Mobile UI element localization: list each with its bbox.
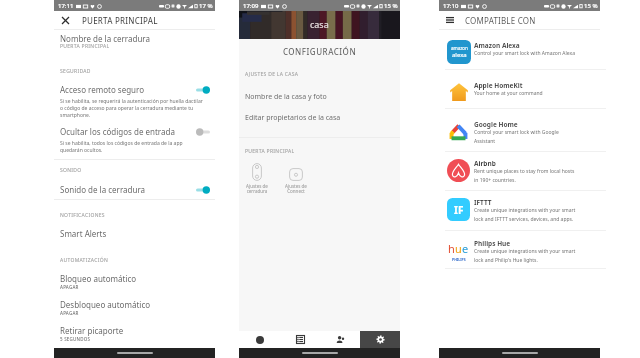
button[interactable]: Google Home (439, 118, 600, 157)
staticText: Nombre de la cerradura (60, 33, 150, 44)
button[interactable]: Ajustes de Connect (276, 160, 315, 195)
staticText: CONFIGURACIÓN (239, 46, 400, 57)
staticText: Google Home (474, 120, 518, 129)
staticText: casa (310, 18, 329, 30)
button[interactable]: Ajustes de cerradura (237, 160, 276, 195)
staticText: Create unique integrations with your sma… (474, 248, 580, 263)
staticText: u (455, 241, 462, 256)
staticText: Amazon Alexa (474, 41, 520, 50)
staticText: APAGAR (60, 310, 79, 316)
staticText: Acceso remoto seguro (60, 84, 195, 95)
staticText: COMPATIBLE CON (465, 15, 536, 26)
staticText: h (448, 241, 455, 256)
button[interactable]: h (439, 237, 600, 276)
staticText: IF (454, 203, 464, 217)
staticText: PUERTA PRINCIPAL (82, 15, 158, 26)
staticText: Bloqueo automático (60, 273, 137, 284)
button[interactable]: Menu (442, 12, 458, 28)
button[interactable]: Sonido de la cerradura (54, 184, 215, 195)
staticText: Your home at your command (474, 90, 543, 97)
staticText: Retirar picaporte (60, 325, 124, 336)
staticText: Philips Hue (474, 239, 511, 248)
staticText: Rent unique places to stay from local ho… (474, 168, 580, 183)
staticText: Airbnb (474, 159, 496, 168)
staticText: Si se habilita, se requerirá la autentic… (60, 98, 205, 119)
button[interactable]: Close (57, 12, 73, 28)
button[interactable]: Activity (280, 331, 320, 348)
staticText: Control your smart lock with Google Assi… (474, 129, 580, 144)
button[interactable]: Nombre de la casa y foto (245, 92, 327, 102)
button[interactable]: Retirar picaporte (60, 325, 221, 342)
button[interactable]: Apple HomeKit (439, 79, 600, 118)
staticText: e (462, 241, 469, 256)
staticText: PUERTA PRINCIPAL (245, 148, 295, 155)
staticText: 17 % (199, 2, 213, 10)
button[interactable]: IF (439, 196, 600, 235)
staticText: amazon (451, 45, 468, 51)
button[interactable]: Bloqueo automático (60, 273, 221, 290)
staticText: 17:09 (243, 2, 259, 10)
staticText: Ajustes de cerradura (246, 183, 268, 195)
staticText: Create unique integrations with your sma… (474, 207, 580, 222)
staticText: Sonido de la cerradura (60, 184, 195, 195)
button[interactable]: Ocultar los códigos de entrada (54, 126, 215, 137)
button[interactable]: Acceso remoto seguro (54, 84, 215, 95)
staticText: Control your smart lock with Amazon Alex… (474, 50, 575, 57)
staticText: PHILIPS (452, 257, 466, 262)
staticText: IFTTT (474, 198, 492, 207)
staticText: Desbloqueo automático (60, 299, 151, 310)
staticText: 5 SEGUNDOS (60, 336, 91, 342)
staticText: 17:11 (58, 2, 74, 10)
staticText: APAGAR (60, 284, 79, 290)
button[interactable]: Home (239, 331, 280, 348)
button[interactable]: Smart Alerts (60, 228, 107, 239)
staticText: alexa (452, 51, 467, 59)
staticText: 15 % (384, 2, 398, 10)
staticText: Apple HomeKit (474, 81, 523, 90)
staticText: Ocultar los códigos de entrada (60, 126, 195, 137)
staticText: NOTIFICACIONES (60, 212, 105, 219)
button[interactable]: Desbloqueo automático (60, 299, 221, 316)
button[interactable]: amazon (439, 39, 600, 78)
button[interactable]: Settings (360, 331, 400, 348)
staticText: AUTOMATIZACIÓN (60, 257, 109, 264)
staticText: SONIDO (60, 167, 82, 174)
button[interactable]: Editar propietarios de la casa (245, 113, 341, 123)
staticText: Si se habilita, todos los códigos de ent… (60, 140, 205, 154)
button[interactable]: Airbnb (439, 157, 600, 196)
button[interactable]: People (320, 331, 360, 348)
staticText: Ajustes de Connect (285, 183, 307, 195)
staticText: PUERTA PRINCIPAL (60, 43, 110, 50)
staticText: 15 % (584, 2, 598, 10)
staticText: 17:10 (443, 2, 459, 10)
staticText: AJUSTES DE LA CASA (245, 71, 299, 78)
staticText: SEGURIDAD (60, 68, 91, 75)
